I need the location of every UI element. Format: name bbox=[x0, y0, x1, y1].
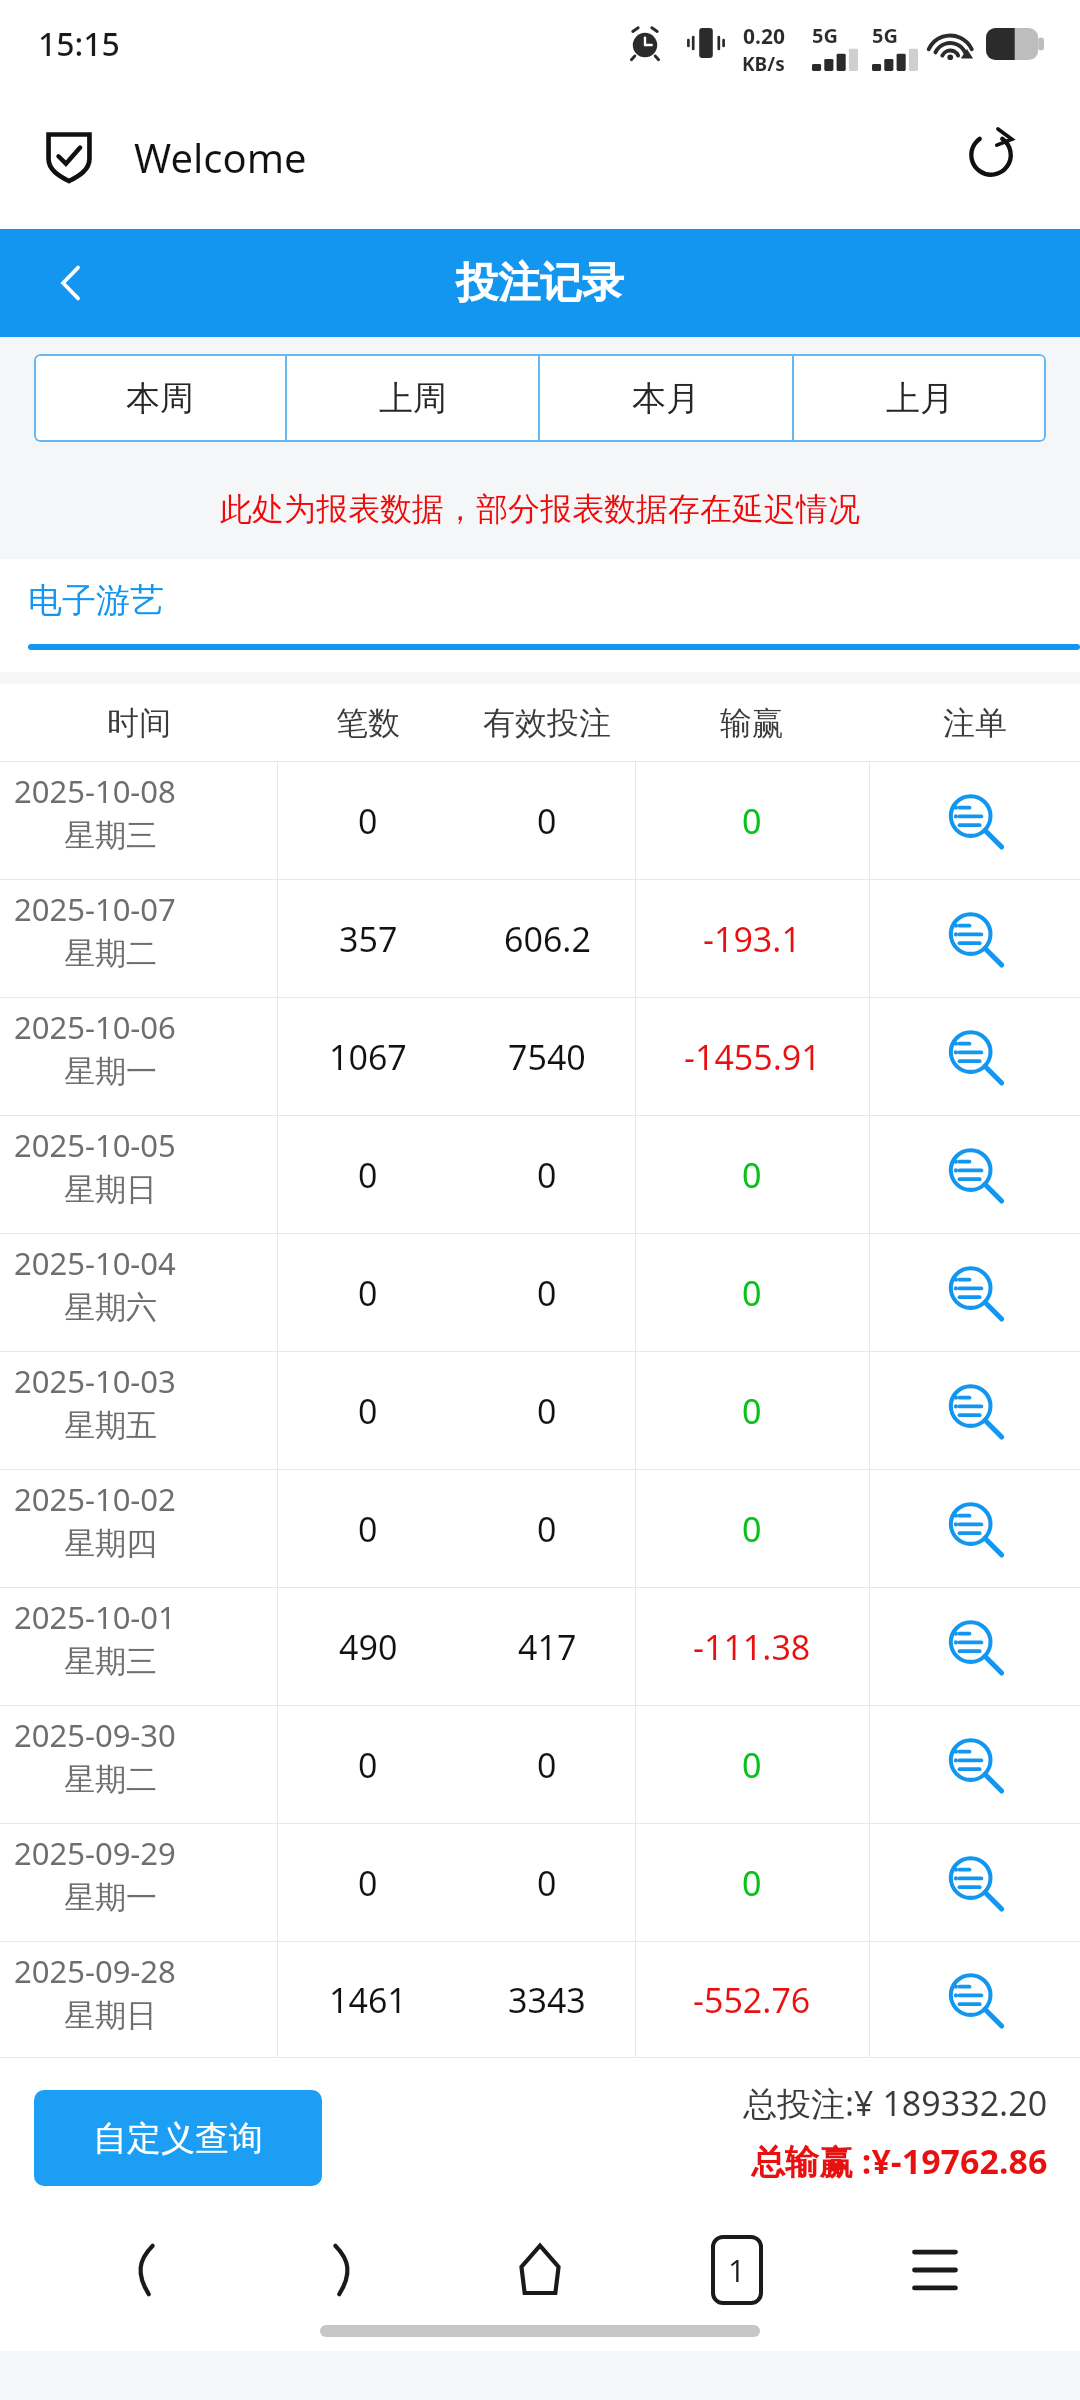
staticText: 0 bbox=[742, 798, 762, 844]
staticText: 星期一 bbox=[64, 1878, 157, 1917]
staticText: 输赢 bbox=[720, 703, 784, 743]
button[interactable]: View bet details bbox=[869, 1234, 1080, 1352]
staticText: 0 bbox=[358, 798, 378, 844]
button[interactable]: 2025-09-29 bbox=[0, 1824, 1080, 1942]
button[interactable]: 自定义查询 bbox=[34, 2090, 322, 2186]
button[interactable]: 2025-10-02 bbox=[0, 1470, 1080, 1588]
staticText: 0 bbox=[537, 1506, 557, 1552]
staticText: 1067 bbox=[329, 1034, 407, 1080]
staticText: 7540 bbox=[508, 1034, 586, 1080]
staticText: 0 bbox=[358, 1860, 378, 1906]
button[interactable]: View bet details bbox=[869, 1706, 1080, 1824]
staticText: 0 bbox=[358, 1742, 378, 1788]
button[interactable]: View bet details bbox=[869, 1352, 1080, 1470]
staticText: -111.38 bbox=[693, 1624, 811, 1670]
button[interactable]: Tabs bbox=[685, 2218, 789, 2322]
staticText: 1 bbox=[728, 2250, 746, 2291]
staticText: 0 bbox=[742, 1388, 762, 1434]
staticText: 5G bbox=[812, 22, 838, 49]
button[interactable]: 2025-10-06 bbox=[0, 998, 1080, 1116]
staticText: 时间 bbox=[107, 703, 171, 743]
staticText: 2025-10-07 bbox=[14, 888, 176, 930]
button[interactable]: 2025-10-04 bbox=[0, 1234, 1080, 1352]
staticText: 2025-09-28 bbox=[14, 1950, 176, 1992]
button[interactable]: 2025-10-03 bbox=[0, 1352, 1080, 1470]
button[interactable]: View bet details bbox=[869, 762, 1080, 880]
staticText: 2025-09-30 bbox=[14, 1714, 176, 1756]
button[interactable]: 2025-10-08 bbox=[0, 762, 1080, 880]
staticText: -552.76 bbox=[693, 1977, 811, 2023]
staticText: 星期日 bbox=[64, 1170, 157, 1209]
staticText: 总输赢 :¥-19762.86 bbox=[751, 2138, 1048, 2184]
staticText: 2025-10-05 bbox=[14, 1124, 176, 1166]
button[interactable]: Refresh bbox=[962, 126, 1020, 184]
staticText: 0 bbox=[742, 1742, 762, 1788]
staticText: 0 bbox=[358, 1152, 378, 1198]
staticText: 星期五 bbox=[64, 1406, 157, 1445]
staticText: 5G bbox=[872, 22, 898, 49]
button[interactable]: Back bbox=[26, 229, 116, 337]
button[interactable]: 本周 bbox=[34, 354, 285, 442]
button[interactable]: 本月 bbox=[540, 354, 792, 442]
staticText: Welcome bbox=[134, 130, 307, 184]
staticText: 2025-10-02 bbox=[14, 1478, 176, 1520]
staticText: 上周 bbox=[379, 377, 447, 420]
button[interactable]: 2025-10-07 bbox=[0, 880, 1080, 998]
staticText: 357 bbox=[339, 916, 398, 962]
staticText: 星期三 bbox=[64, 1642, 157, 1681]
staticText: 0 bbox=[537, 1152, 557, 1198]
button[interactable]: View bet details bbox=[869, 880, 1080, 998]
staticText: 417 bbox=[518, 1624, 577, 1670]
button[interactable]: View bet details bbox=[869, 1824, 1080, 1942]
button[interactable]: 上月 bbox=[794, 354, 1046, 442]
staticText: 0 bbox=[537, 1860, 557, 1906]
staticText: 2025-10-03 bbox=[14, 1360, 176, 1402]
staticText: 星期四 bbox=[64, 1524, 157, 1563]
staticText: 本周 bbox=[126, 377, 194, 420]
button[interactable]: Back bbox=[93, 2218, 197, 2322]
staticText: 2025-10-04 bbox=[14, 1242, 176, 1284]
staticText: 0 bbox=[537, 798, 557, 844]
staticText: 此处为报表数据，部分报表数据存在延迟情况 bbox=[220, 489, 860, 529]
button[interactable]: 2025-09-30 bbox=[0, 1706, 1080, 1824]
button[interactable]: View bet details bbox=[869, 1470, 1080, 1588]
staticText: -193.1 bbox=[703, 916, 801, 962]
button[interactable]: View bet details bbox=[869, 998, 1080, 1116]
staticText: 笔数 bbox=[336, 703, 400, 743]
staticText: 606.2 bbox=[504, 916, 591, 962]
button[interactable]: 2025-10-01 bbox=[0, 1588, 1080, 1706]
staticText: 1461 bbox=[329, 1977, 407, 2023]
staticText: 星期二 bbox=[64, 934, 157, 973]
staticText: 星期一 bbox=[64, 1052, 157, 1091]
staticText: 0 bbox=[358, 1506, 378, 1552]
button[interactable]: View bet details bbox=[869, 1942, 1080, 2058]
staticText: 15:15 bbox=[38, 22, 120, 66]
staticText: 2025-09-29 bbox=[14, 1832, 176, 1874]
staticText: 总投注:¥ 189332.20 bbox=[743, 2080, 1048, 2126]
button[interactable]: Secure bbox=[38, 124, 100, 186]
staticText: 2025-10-08 bbox=[14, 770, 176, 812]
button[interactable]: Menu bbox=[883, 2218, 987, 2322]
staticText: 星期六 bbox=[64, 1288, 157, 1327]
staticText: 2025-10-01 bbox=[14, 1596, 176, 1638]
button[interactable]: Home bbox=[488, 2218, 592, 2322]
button[interactable]: View bet details bbox=[869, 1588, 1080, 1706]
button[interactable]: 2025-10-05 bbox=[0, 1116, 1080, 1234]
staticText: 上月 bbox=[886, 377, 954, 420]
button[interactable]: Forward bbox=[291, 2218, 395, 2322]
staticText: 0 bbox=[742, 1860, 762, 1906]
staticText: 2025-10-06 bbox=[14, 1006, 176, 1048]
button[interactable]: 电子游艺 bbox=[28, 559, 1080, 672]
staticText: KB/s bbox=[742, 51, 785, 77]
button[interactable]: 2025-09-28 bbox=[0, 1942, 1080, 2058]
button[interactable]: 上周 bbox=[287, 354, 538, 442]
button[interactable]: View bet details bbox=[869, 1116, 1080, 1234]
staticText: 星期三 bbox=[64, 816, 157, 855]
staticText: 0 bbox=[358, 1388, 378, 1434]
staticText: 0 bbox=[537, 1388, 557, 1434]
staticText: 投注记录 bbox=[456, 257, 624, 310]
staticText: 0 bbox=[537, 1270, 557, 1316]
staticText: 本月 bbox=[632, 377, 700, 420]
staticText: 0 bbox=[537, 1742, 557, 1788]
staticText: 490 bbox=[339, 1624, 398, 1670]
